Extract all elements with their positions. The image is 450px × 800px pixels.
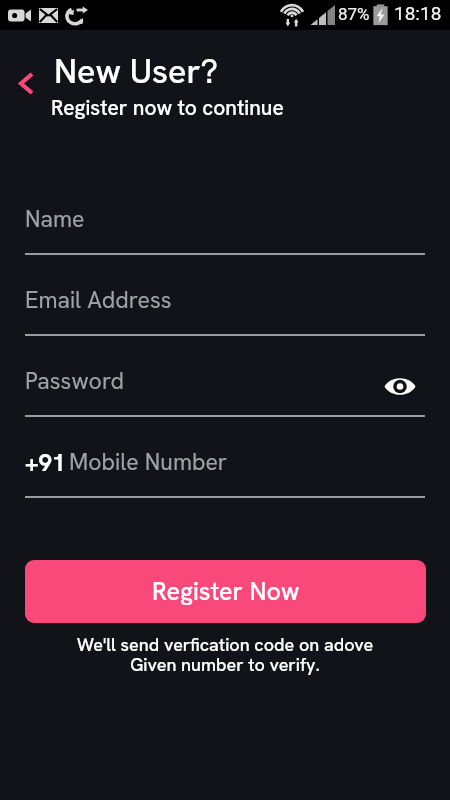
staticText: +91 bbox=[25, 447, 66, 478]
button[interactable]: Password bbox=[25, 360, 425, 402]
button[interactable]: Register Now bbox=[25, 560, 426, 623]
staticText: 18:18 bbox=[394, 2, 442, 24]
staticText: Register Now bbox=[152, 575, 300, 608]
button[interactable]: Name bbox=[25, 198, 425, 240]
staticText: Register now to continue bbox=[51, 94, 284, 121]
staticText: New User? bbox=[54, 49, 219, 93]
staticText: Name bbox=[25, 204, 85, 234]
button[interactable]: Show password bbox=[378, 366, 422, 406]
staticText: Password bbox=[25, 366, 125, 396]
button[interactable]: +91 bbox=[25, 441, 425, 483]
staticText: Mobile Number bbox=[69, 447, 228, 477]
staticText: We'll send verfication code on adove Giv… bbox=[0, 633, 450, 677]
button[interactable]: Email Address bbox=[25, 279, 425, 321]
staticText: Email Address bbox=[25, 285, 172, 315]
button[interactable]: Back bbox=[10, 66, 42, 98]
staticText: 87% bbox=[338, 4, 370, 24]
